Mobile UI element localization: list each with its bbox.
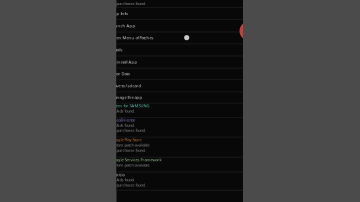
staticText: Uninstall App	[110, 59, 137, 65]
staticText: Move to /sdcard	[110, 83, 141, 88]
button[interactable]: Uninstall App	[110, 56, 260, 68]
staticText: Custom patch available	[110, 162, 149, 168]
staticText: No purchases found.	[110, 182, 145, 188]
staticText: Manage the app	[110, 94, 142, 100]
staticText: No purchases found.	[110, 128, 145, 133]
staticText: Open Menu of Patches	[110, 35, 153, 40]
button[interactable]: Habit.io	[110, 172, 260, 190]
staticText: Clear Data	[110, 71, 129, 76]
button[interactable]: App Info	[110, 7, 260, 19]
button[interactable]: Clear Data	[110, 68, 260, 79]
staticText: Custom patch available	[110, 142, 149, 148]
staticText: VideoDirector	[110, 117, 135, 123]
button[interactable]: Google Play Store	[110, 137, 260, 157]
button[interactable]: Launch App	[110, 19, 260, 32]
staticText: No Ads found.	[110, 122, 134, 128]
button[interactable]: Google Services Framework	[110, 157, 260, 172]
button[interactable]: Details	[110, 44, 260, 56]
staticText: No purchases found.	[110, 1, 145, 6]
button[interactable]: Move to /sdcard	[110, 79, 260, 92]
staticText: Google Services Framework	[110, 157, 161, 162]
staticText: No Ads found.	[110, 108, 134, 114]
staticText: App Info	[110, 11, 127, 16]
staticText: No Ads found.	[110, 177, 134, 182]
button[interactable]: VideoDirector	[110, 117, 260, 137]
button[interactable]: Open Menu of Patches	[110, 32, 260, 44]
staticText: Google Play Store	[110, 137, 141, 142]
button[interactable]: Green for SAMSUNG	[110, 103, 260, 117]
staticText: No purchases found.	[110, 147, 145, 153]
staticText: Green for SAMSUNG	[110, 103, 149, 108]
button[interactable]: Manage the app	[110, 92, 260, 103]
staticText: Launch App	[110, 23, 135, 28]
staticText: Habit.io	[110, 172, 124, 177]
staticText: Details	[110, 47, 122, 52]
